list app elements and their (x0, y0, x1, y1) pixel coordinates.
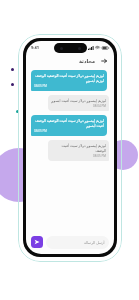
staticText: أرسل الرسالة (84, 240, 105, 245)
staticText: 08:05 PM (51, 154, 106, 158)
button[interactable]: أرسل الرسالة (46, 236, 109, 249)
button[interactable]: لوريم إيبسوم دولار سيت أميت الوصف (48, 140, 109, 161)
staticText: 08:05 PM (34, 84, 104, 88)
staticText: 9:41 (31, 45, 39, 50)
staticText: 08:04 PM (51, 104, 106, 108)
staticText: لوريم إيبسوم دولار سيت أميت الوصفية الوص… (34, 118, 104, 128)
staticText: لوريم إيبسوم دولار سيت أميت الوصفية الوص… (34, 73, 104, 83)
button[interactable]: لوريم إيبسوم دولار سيت أميت الوصفية الوص… (31, 70, 107, 91)
button[interactable]: لوريم إيبسوم دولار سيت أميت ابسوم (48, 95, 109, 111)
button[interactable]: Send (31, 236, 43, 248)
button[interactable]: Back (99, 56, 108, 65)
button[interactable]: محادثة (79, 58, 96, 64)
button[interactable]: لوريم إيبسوم دولار سيت أميت الوصفية الوص… (31, 115, 107, 136)
staticText: لوريم إيبسوم دولار سيت أميت ابسوم (51, 98, 106, 103)
staticText: 08:05 PM (34, 129, 104, 133)
staticText: لوريم إيبسوم دولار سيت أميت الوصف (51, 143, 106, 153)
